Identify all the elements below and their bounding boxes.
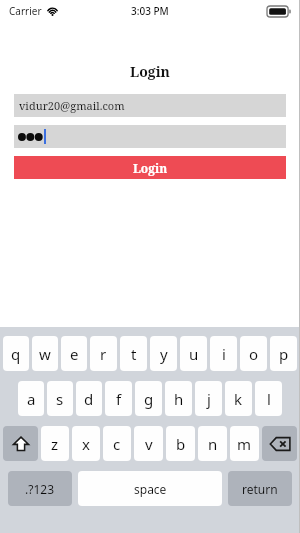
staticText: Login	[133, 160, 168, 176]
staticText: s	[56, 389, 64, 409]
button[interactable]: j	[195, 381, 222, 416]
staticText: k	[234, 389, 243, 409]
staticText: b	[176, 434, 186, 454]
staticText: x	[82, 434, 90, 454]
button[interactable]: e	[61, 336, 87, 371]
button[interactable]: a	[18, 381, 44, 416]
staticText: 3:03 PM	[131, 4, 169, 18]
staticText: d	[84, 389, 94, 409]
staticText: Login	[0, 62, 300, 81]
staticText: vidur20@gmail.com	[19, 98, 125, 113]
staticText: i	[222, 344, 226, 364]
staticText: z	[51, 434, 59, 454]
staticText: q	[11, 344, 21, 364]
button[interactable]: t	[120, 336, 147, 371]
button[interactable]: k	[225, 381, 252, 416]
button[interactable]: y	[150, 336, 177, 371]
button[interactable]: Delete	[262, 426, 297, 461]
button[interactable]: o	[240, 336, 267, 371]
button[interactable]: w	[32, 336, 58, 371]
button[interactable]	[14, 125, 286, 148]
staticText: w	[39, 344, 51, 364]
staticText: p	[279, 344, 289, 364]
button[interactable]: u	[180, 336, 207, 371]
staticText: y	[160, 344, 168, 364]
staticText: h	[174, 389, 184, 409]
staticText: e	[70, 344, 79, 364]
button[interactable]: q	[3, 336, 29, 371]
button[interactable]: v	[134, 426, 163, 461]
button[interactable]: x	[72, 426, 100, 461]
button[interactable]: h	[165, 381, 192, 416]
staticText: t	[131, 344, 137, 364]
button[interactable]: d	[76, 381, 102, 416]
button[interactable]: c	[103, 426, 131, 461]
button[interactable]: .?123	[8, 471, 72, 506]
staticText: c	[113, 434, 121, 454]
button[interactable]: Shift	[3, 426, 38, 461]
staticText: v	[145, 434, 153, 454]
staticText: j	[207, 389, 211, 409]
staticText: space	[134, 481, 167, 497]
button[interactable]: p	[270, 336, 297, 371]
staticText: r	[100, 344, 107, 364]
button[interactable]: m	[230, 426, 259, 461]
button[interactable]: vidur20@gmail.com	[14, 94, 286, 117]
button[interactable]: f	[105, 381, 132, 416]
staticText: u	[189, 344, 199, 364]
staticText: m	[237, 434, 252, 454]
staticText: a	[27, 389, 36, 409]
button[interactable]: s	[47, 381, 73, 416]
staticText: Carrier	[9, 4, 42, 18]
button[interactable]: Login	[14, 156, 286, 179]
staticText: f	[116, 389, 122, 409]
staticText: o	[249, 344, 259, 364]
button[interactable]: i	[210, 336, 237, 371]
button[interactable]: b	[166, 426, 195, 461]
button[interactable]: n	[198, 426, 227, 461]
button[interactable]: l	[255, 381, 282, 416]
staticText: g	[144, 389, 154, 409]
staticText: .?123	[25, 481, 55, 497]
button[interactable]: z	[41, 426, 69, 461]
button[interactable]: space	[78, 471, 222, 506]
button[interactable]: r	[90, 336, 117, 371]
button[interactable]: return	[228, 471, 292, 506]
staticText: l	[267, 389, 271, 409]
staticText: return	[242, 481, 278, 497]
staticText: n	[208, 434, 218, 454]
button[interactable]: g	[135, 381, 162, 416]
